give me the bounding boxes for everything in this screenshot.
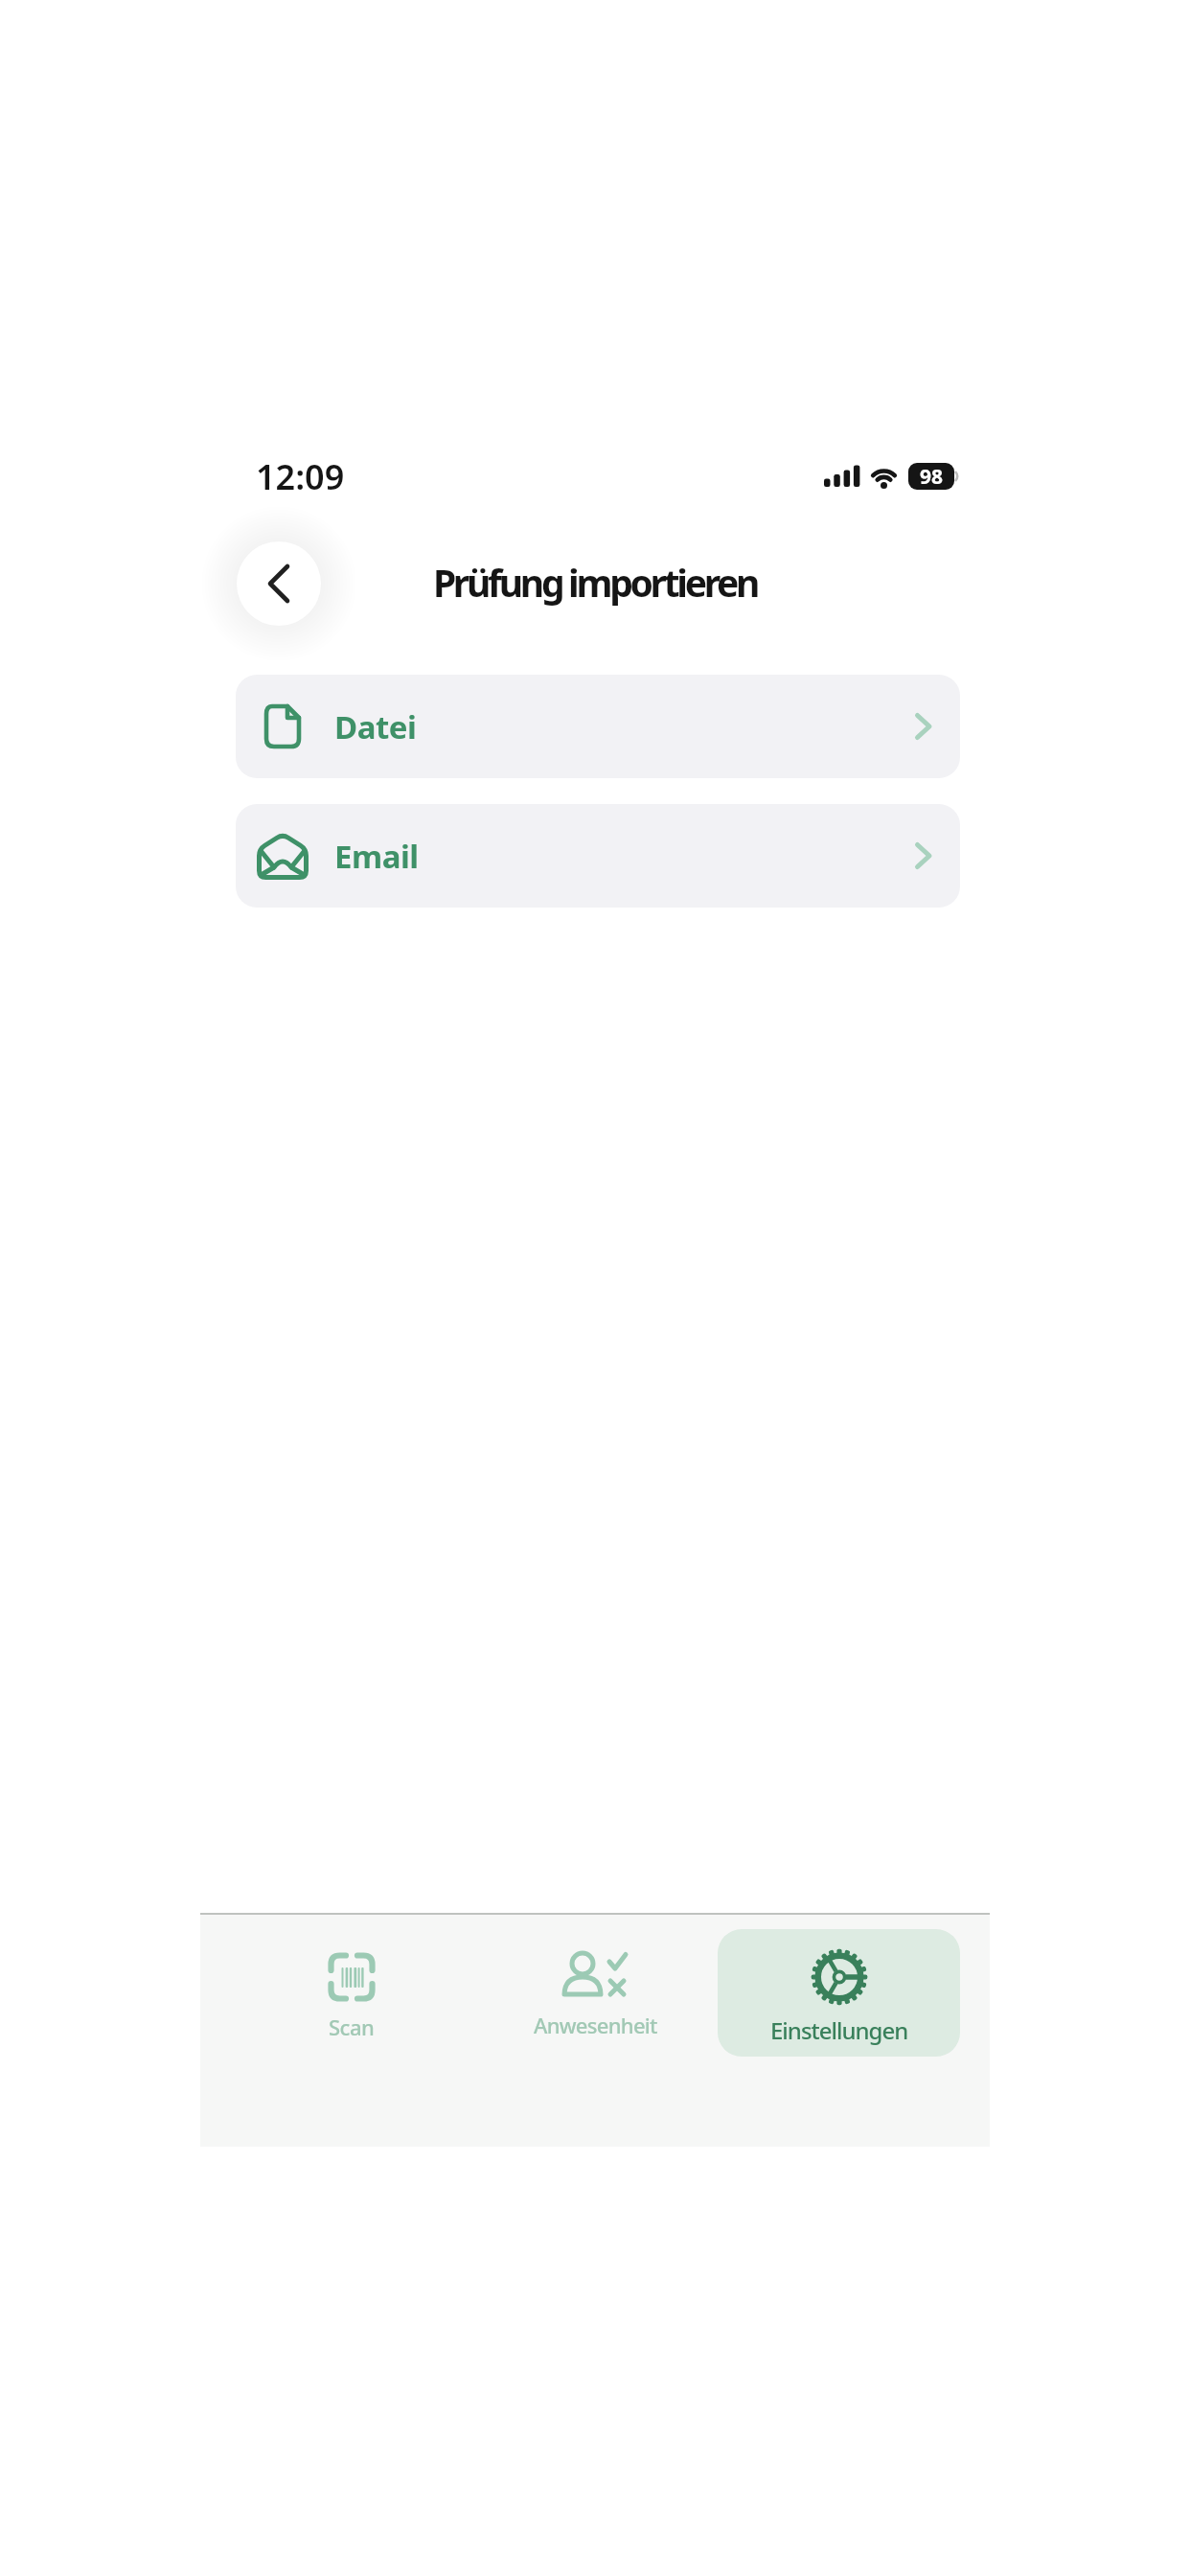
button[interactable]: Einstellungen (718, 1929, 960, 2057)
button[interactable]: Datei (236, 675, 960, 778)
button[interactable]: Scan (230, 1929, 473, 2057)
staticText: Email (334, 835, 419, 878)
staticText: Datei (334, 705, 417, 748)
staticText: 98 (920, 463, 944, 490)
staticText: 12:09 (256, 453, 345, 500)
button[interactable] (237, 541, 321, 626)
staticText: Scan (329, 2012, 375, 2041)
button[interactable]: Email (236, 804, 960, 908)
staticText: Anwesenheit (534, 2011, 657, 2039)
staticText: Prüfung importieren (0, 557, 1190, 608)
button[interactable]: Anwesenheit (473, 1929, 717, 2057)
staticText: Einstellungen (770, 2014, 908, 2046)
